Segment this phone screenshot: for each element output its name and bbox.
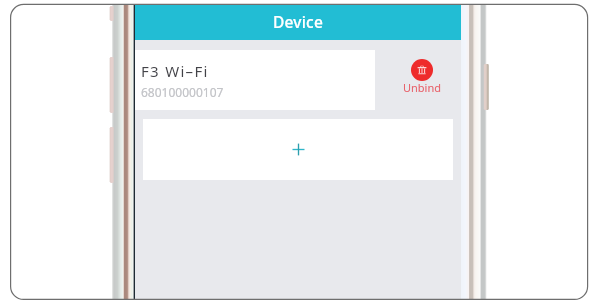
button[interactable]: F3 Wi–Fi [135,50,375,110]
staticText: Unbind [403,80,442,95]
staticText: 680100000107 [141,84,224,100]
staticText: F3 Wi–Fi [141,61,209,81]
button[interactable]: Unbind [391,52,453,108]
staticText: Device [273,11,323,32]
button[interactable]: Add device [143,119,453,180]
